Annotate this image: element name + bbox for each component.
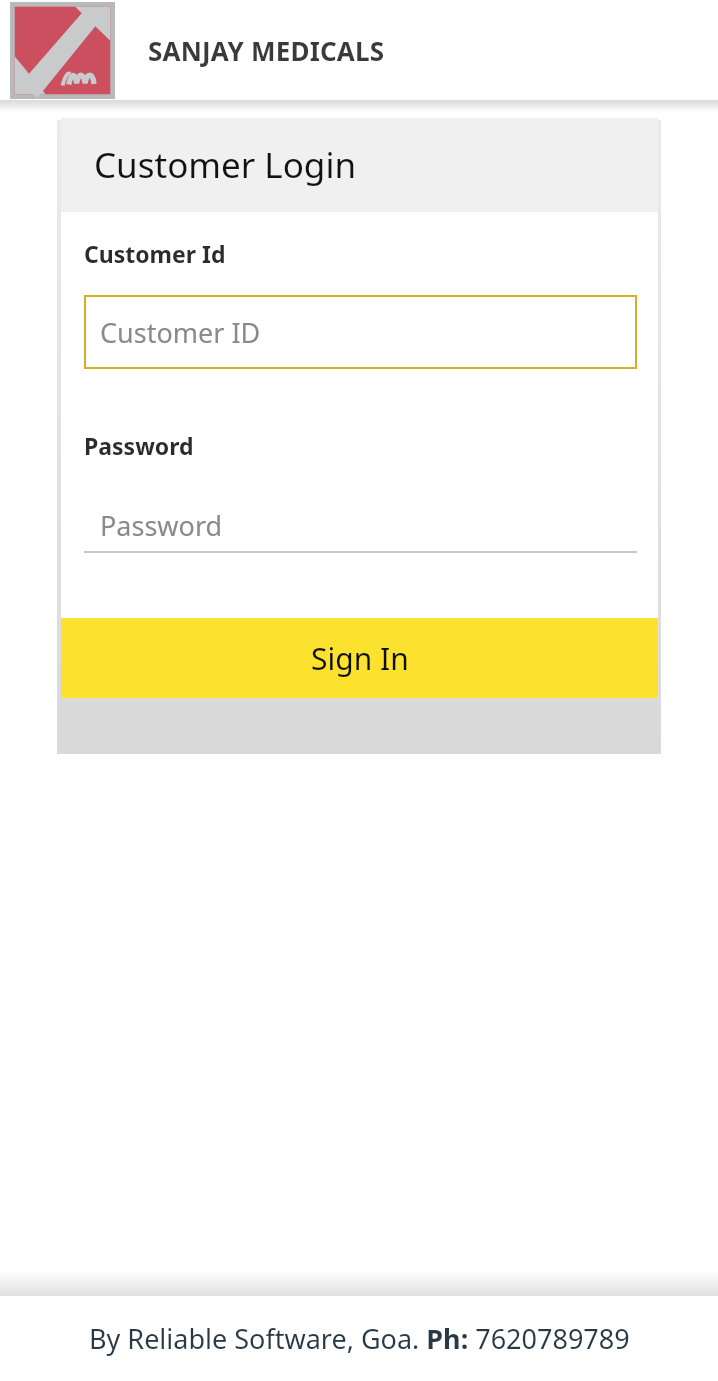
staticText: Sign In — [311, 638, 409, 679]
other: Sanjay Medicals logo — [10, 2, 115, 99]
button[interactable]: Password — [84, 499, 637, 553]
staticText: Customer Id — [84, 238, 226, 269]
button[interactable]: Customer ID — [84, 295, 637, 369]
staticText: Password — [84, 430, 194, 461]
staticText: SANJAY MEDICALS — [148, 33, 385, 68]
staticText: Password — [100, 507, 223, 544]
staticText: Customer Login — [94, 141, 357, 189]
button[interactable]: Sign In — [61, 618, 658, 698]
staticText: Customer ID — [100, 314, 261, 351]
staticText: By Reliable Software, Goa. Ph: 762078978… — [89, 1320, 630, 1357]
